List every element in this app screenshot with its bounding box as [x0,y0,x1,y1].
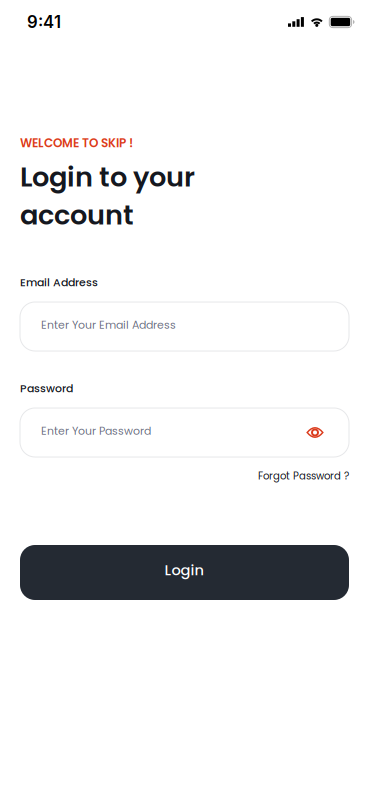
staticText: Enter Your Email Address [41,317,176,333]
staticText: Password [20,381,73,396]
staticText: 9:41 [27,12,61,32]
button[interactable]: Login [20,545,349,600]
button[interactable]: Show password [300,417,330,447]
staticText: account [20,196,134,234]
staticText: Enter Your Password [41,423,151,439]
staticText: WELCOME TO SKIP ! [20,135,133,151]
button[interactable]: Forgot Password ? [258,469,349,483]
staticText: Login [164,560,204,580]
staticText: Email Address [20,275,98,290]
staticText: Login to your [20,158,195,196]
staticText: Forgot Password ? [258,469,349,483]
